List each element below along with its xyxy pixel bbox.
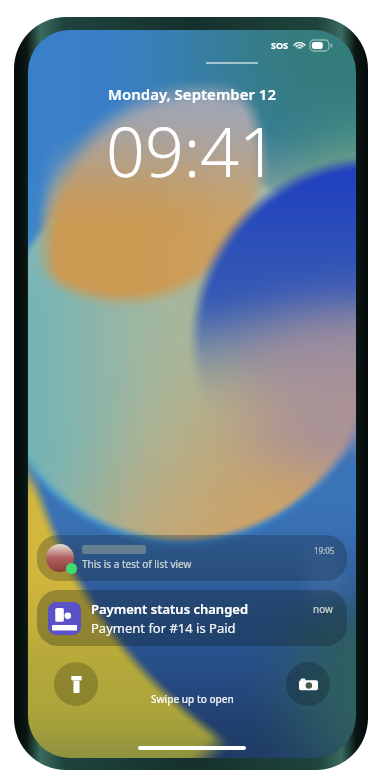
button[interactable]: Flashlight (54, 662, 98, 706)
staticText: Payment status changed (91, 600, 249, 618)
staticText: now (313, 602, 333, 616)
staticText: 09:41 (28, 104, 356, 197)
staticText: Payment for #14 is Paid (91, 619, 236, 637)
staticText: Swipe up to open (151, 692, 234, 706)
staticText: This is a test of list view (82, 557, 192, 571)
button[interactable]: Payment status changed (37, 590, 347, 646)
button[interactable]: This is a test of list view (37, 535, 347, 581)
staticText: Monday, September 12 (28, 84, 356, 104)
staticText: 19:05 (314, 545, 335, 556)
staticText: SOS (271, 39, 289, 51)
button[interactable]: Camera (286, 662, 330, 706)
